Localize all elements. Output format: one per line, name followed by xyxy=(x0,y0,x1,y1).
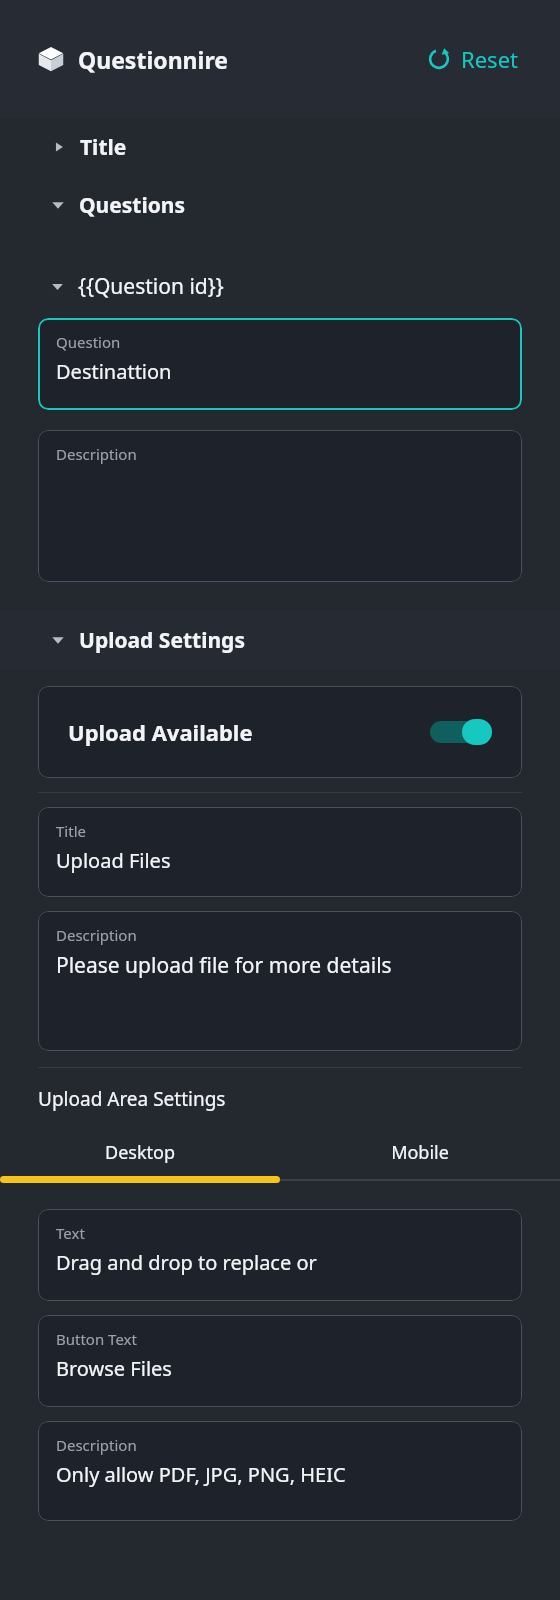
button[interactable]: Title xyxy=(38,807,522,897)
staticText: {{Question id}} xyxy=(78,272,224,301)
button[interactable]: Upload Available xyxy=(38,686,522,778)
staticText: Reset xyxy=(461,44,518,74)
staticText: Upload Files xyxy=(56,847,171,874)
button[interactable]: Title xyxy=(0,118,560,176)
staticText: Questionnire xyxy=(78,44,228,75)
staticText: Title xyxy=(56,821,86,841)
staticText: Drag and drop to replace or xyxy=(56,1249,317,1276)
button[interactable]: Upload Available toggle xyxy=(430,719,492,745)
button[interactable]: {{Question id}} xyxy=(0,262,560,310)
staticText: Questions xyxy=(79,191,186,220)
button[interactable]: Desktop xyxy=(0,1134,280,1170)
button[interactable]: Mobile xyxy=(280,1134,560,1170)
staticText: Upload Area Settings xyxy=(38,1086,226,1112)
staticText: Description xyxy=(56,1435,137,1455)
staticText: Description xyxy=(56,444,137,464)
staticText: Text xyxy=(56,1223,85,1243)
button[interactable]: Text xyxy=(38,1209,522,1301)
staticText: Upload Settings xyxy=(79,626,245,655)
button[interactable]: Description xyxy=(38,430,522,582)
staticText: Mobile xyxy=(391,1140,449,1165)
staticText: Desktop xyxy=(105,1140,175,1165)
staticText: Please upload file for more details xyxy=(56,951,392,980)
button[interactable]: Description xyxy=(38,1421,522,1521)
button[interactable]: Button Text xyxy=(38,1315,522,1407)
button[interactable]: Question xyxy=(38,318,522,410)
staticText: Browse Files xyxy=(56,1355,172,1382)
staticText: Description xyxy=(56,925,137,945)
button[interactable]: Questions xyxy=(0,176,560,234)
button[interactable]: Description xyxy=(38,911,522,1051)
staticText: Destinattion xyxy=(56,358,172,385)
staticText: Button Text xyxy=(56,1329,137,1349)
staticText: Only allow PDF, JPG, PNG, HEIC xyxy=(56,1461,346,1488)
button[interactable]: Upload Settings xyxy=(0,610,560,670)
staticText: Upload Available xyxy=(68,717,253,747)
staticText: Question xyxy=(56,332,121,352)
staticText: Title xyxy=(80,133,127,162)
button[interactable]: Reset xyxy=(423,38,522,80)
